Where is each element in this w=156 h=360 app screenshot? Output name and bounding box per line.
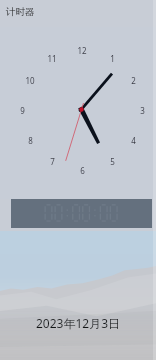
staticText: 11 [47,53,57,64]
staticText: 7 [50,156,55,167]
staticText: 2 [131,75,136,86]
staticText: 4 [131,135,136,146]
staticText: 6 [80,165,85,176]
staticText: 计时器 [6,6,35,18]
staticText: 9 [20,105,25,116]
staticText: 5 [110,156,115,167]
staticText: 1 [110,53,115,64]
staticText: 8 [28,135,33,146]
staticText: 3 [140,105,145,116]
staticText: 12 [77,45,87,56]
button[interactable]: 计时器 [0,0,156,27]
staticText: 10 [25,75,35,86]
staticText: 2023年12月3日 [36,315,121,331]
